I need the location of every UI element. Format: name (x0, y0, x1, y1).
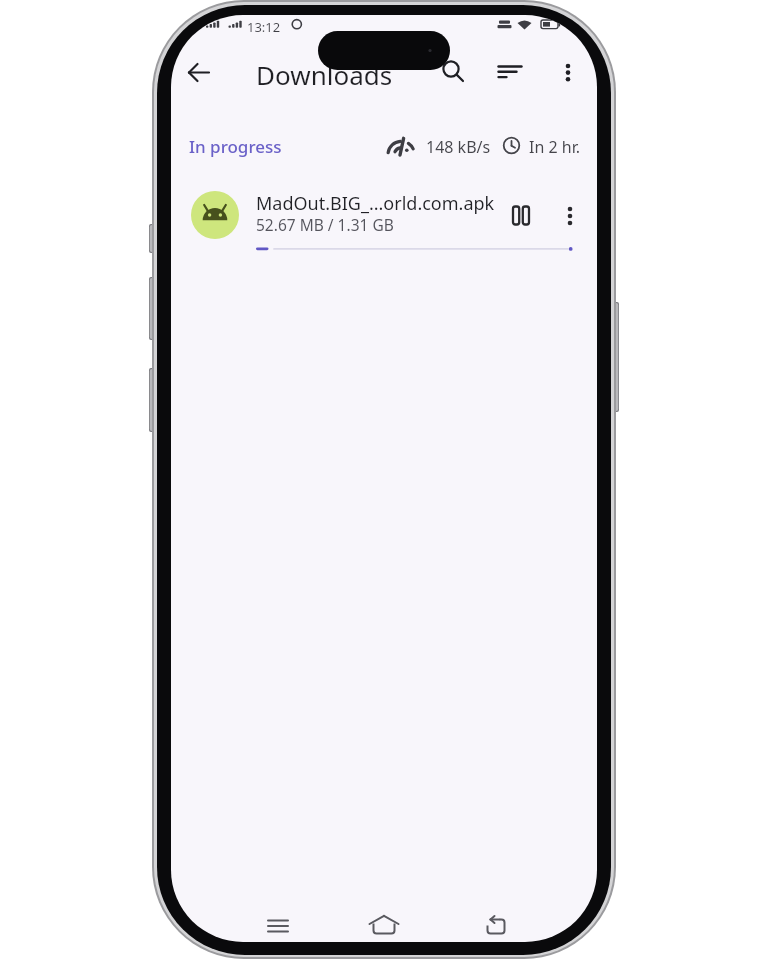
button[interactable]: MadOut.BIG_...orld.com.apk (179, 184, 589, 259)
button[interactable] (258, 912, 298, 940)
button[interactable] (439, 57, 467, 85)
staticText: In progress (189, 135, 282, 157)
button[interactable] (557, 59, 579, 85)
button[interactable] (364, 909, 404, 939)
button[interactable] (495, 59, 523, 83)
staticText: 52.67 MB / 1.31 GB (256, 214, 394, 235)
button[interactable] (507, 201, 541, 229)
staticText: 13:12 (247, 18, 281, 36)
staticText: Downloads (256, 57, 393, 92)
button[interactable] (484, 911, 522, 939)
button[interactable]: In progress (189, 135, 289, 157)
staticText: 148 kB/s (426, 136, 491, 158)
button[interactable] (187, 60, 213, 86)
staticText: In 2 hr. (529, 136, 581, 158)
button[interactable] (559, 202, 581, 228)
staticText: MadOut.BIG_...orld.com.apk (256, 191, 495, 216)
